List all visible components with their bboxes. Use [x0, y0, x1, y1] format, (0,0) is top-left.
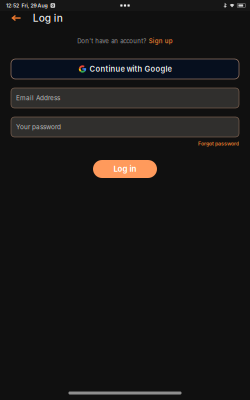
button[interactable]: Your password [11, 117, 239, 137]
button[interactable]: Forgot password [198, 140, 239, 147]
staticText: Don't have an account? [77, 37, 146, 45]
staticText: 12:52 [6, 2, 19, 9]
staticText: Sign up [149, 37, 173, 45]
button[interactable]: Continue with Google [11, 59, 239, 79]
staticText: Forgot password [198, 140, 239, 147]
staticText: Fri, 29 Aug [21, 2, 47, 9]
button[interactable]: Back [0, 11, 33, 25]
staticText: Log in [33, 12, 63, 24]
staticText: Log in [113, 164, 136, 174]
staticText: Continue with Google [89, 64, 171, 74]
button[interactable]: Log in [93, 160, 157, 178]
staticText: Your password [16, 123, 61, 131]
staticText: Email Address [16, 94, 60, 102]
button[interactable]: Sign up [149, 37, 173, 45]
button[interactable]: Email Address [11, 88, 239, 108]
